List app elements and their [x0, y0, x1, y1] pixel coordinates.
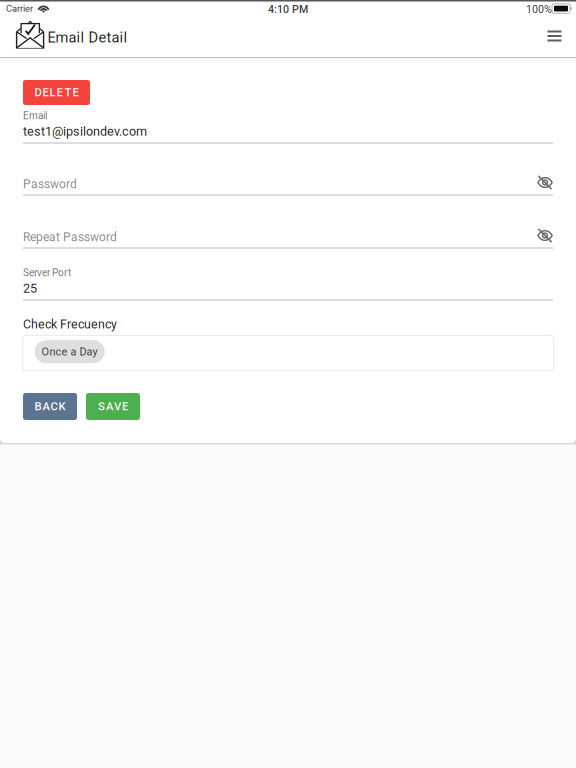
staticText: 100% [526, 3, 552, 15]
staticText: Email Detail [47, 29, 127, 46]
staticText: Check Frecuency [23, 317, 117, 331]
staticText: Carrier [6, 3, 33, 14]
button[interactable]: Once a Day [35, 340, 105, 363]
button[interactable]: Menu [537, 21, 571, 51]
button[interactable]: Show password [537, 174, 553, 190]
staticText: DELETE [34, 86, 78, 99]
staticText: Email [23, 110, 47, 122]
button[interactable]: BACK [23, 393, 77, 420]
button[interactable]: Show repeat password [537, 227, 553, 243]
button[interactable]: SAVE [86, 393, 140, 420]
staticText: test1@ipsilondev.com [23, 124, 147, 139]
staticText: Server Port [23, 267, 71, 279]
staticText: Once a Day [42, 345, 98, 358]
button[interactable]: DELETE [23, 80, 90, 105]
staticText: 25 [23, 281, 37, 296]
staticText: 4:10 PM [268, 3, 308, 15]
staticText: Password [23, 177, 77, 191]
staticText: BACK [34, 400, 65, 413]
staticText: SAVE [98, 400, 128, 413]
staticText: Repeat Password [23, 230, 117, 244]
